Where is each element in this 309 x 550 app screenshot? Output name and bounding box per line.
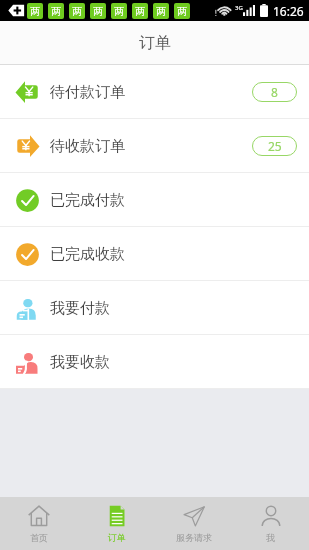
staticText: 16:26 <box>273 3 304 19</box>
button[interactable]: 服务请求 <box>155 497 232 550</box>
staticText: 两 <box>135 5 145 18</box>
staticText: 我 <box>266 532 275 543</box>
staticText: 我要付款 <box>50 299 110 318</box>
staticText: 两 <box>51 5 61 18</box>
staticText: 两 <box>156 5 166 18</box>
staticText: 两 <box>93 5 103 18</box>
button[interactable]: 首页 <box>0 497 78 550</box>
button[interactable]: 订单 <box>78 497 155 550</box>
button[interactable]: 待付款订单 <box>0 65 309 119</box>
button[interactable]: 待收款订单 <box>0 119 309 173</box>
staticText: 3G <box>235 4 243 12</box>
button[interactable]: 已完成付款 <box>0 173 309 227</box>
staticText: 25 <box>268 138 282 154</box>
staticText: 两 <box>177 5 187 18</box>
staticText: 我要收款 <box>50 353 110 372</box>
staticText: 已完成收款 <box>50 245 125 264</box>
staticText: 服务请求 <box>176 532 212 543</box>
staticText: 待收款订单 <box>50 137 125 156</box>
staticText: 8 <box>271 84 278 100</box>
staticText: 两 <box>114 5 124 18</box>
button[interactable]: 已完成收款 <box>0 227 309 281</box>
staticText: 已完成付款 <box>50 191 125 210</box>
staticText: 订单 <box>139 33 171 53</box>
button[interactable]: 我 <box>232 497 309 550</box>
staticText: 两 <box>30 5 40 18</box>
staticText: 订单 <box>108 532 126 543</box>
button[interactable]: 我要付款 <box>0 281 309 335</box>
staticText: 两 <box>72 5 82 18</box>
button[interactable]: 我要收款 <box>0 335 309 389</box>
staticText: 待付款订单 <box>50 83 125 102</box>
staticText: 首页 <box>30 532 48 543</box>
